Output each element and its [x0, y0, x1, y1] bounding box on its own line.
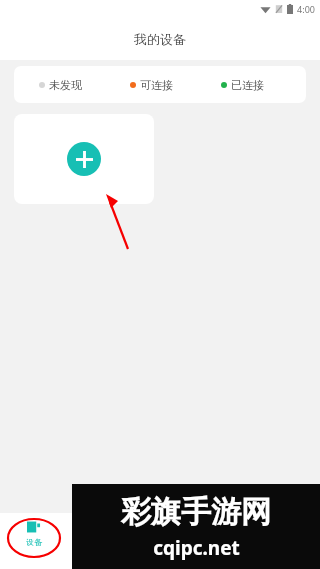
- button[interactable]: 设备: [14, 520, 54, 547]
- staticText: 未发现: [49, 78, 82, 92]
- staticText: 4:00: [297, 3, 315, 15]
- button[interactable]: 添加设备: [14, 114, 154, 204]
- staticText: 可连接: [140, 78, 173, 92]
- staticText: 设备: [26, 537, 42, 547]
- staticText: cqipc.net: [153, 535, 240, 561]
- staticText: 已连接: [231, 78, 264, 92]
- staticText: 我的设备: [134, 31, 186, 47]
- staticText: 彩旗手游网: [121, 493, 271, 531]
- button[interactable]: 未发现: [14, 66, 306, 103]
